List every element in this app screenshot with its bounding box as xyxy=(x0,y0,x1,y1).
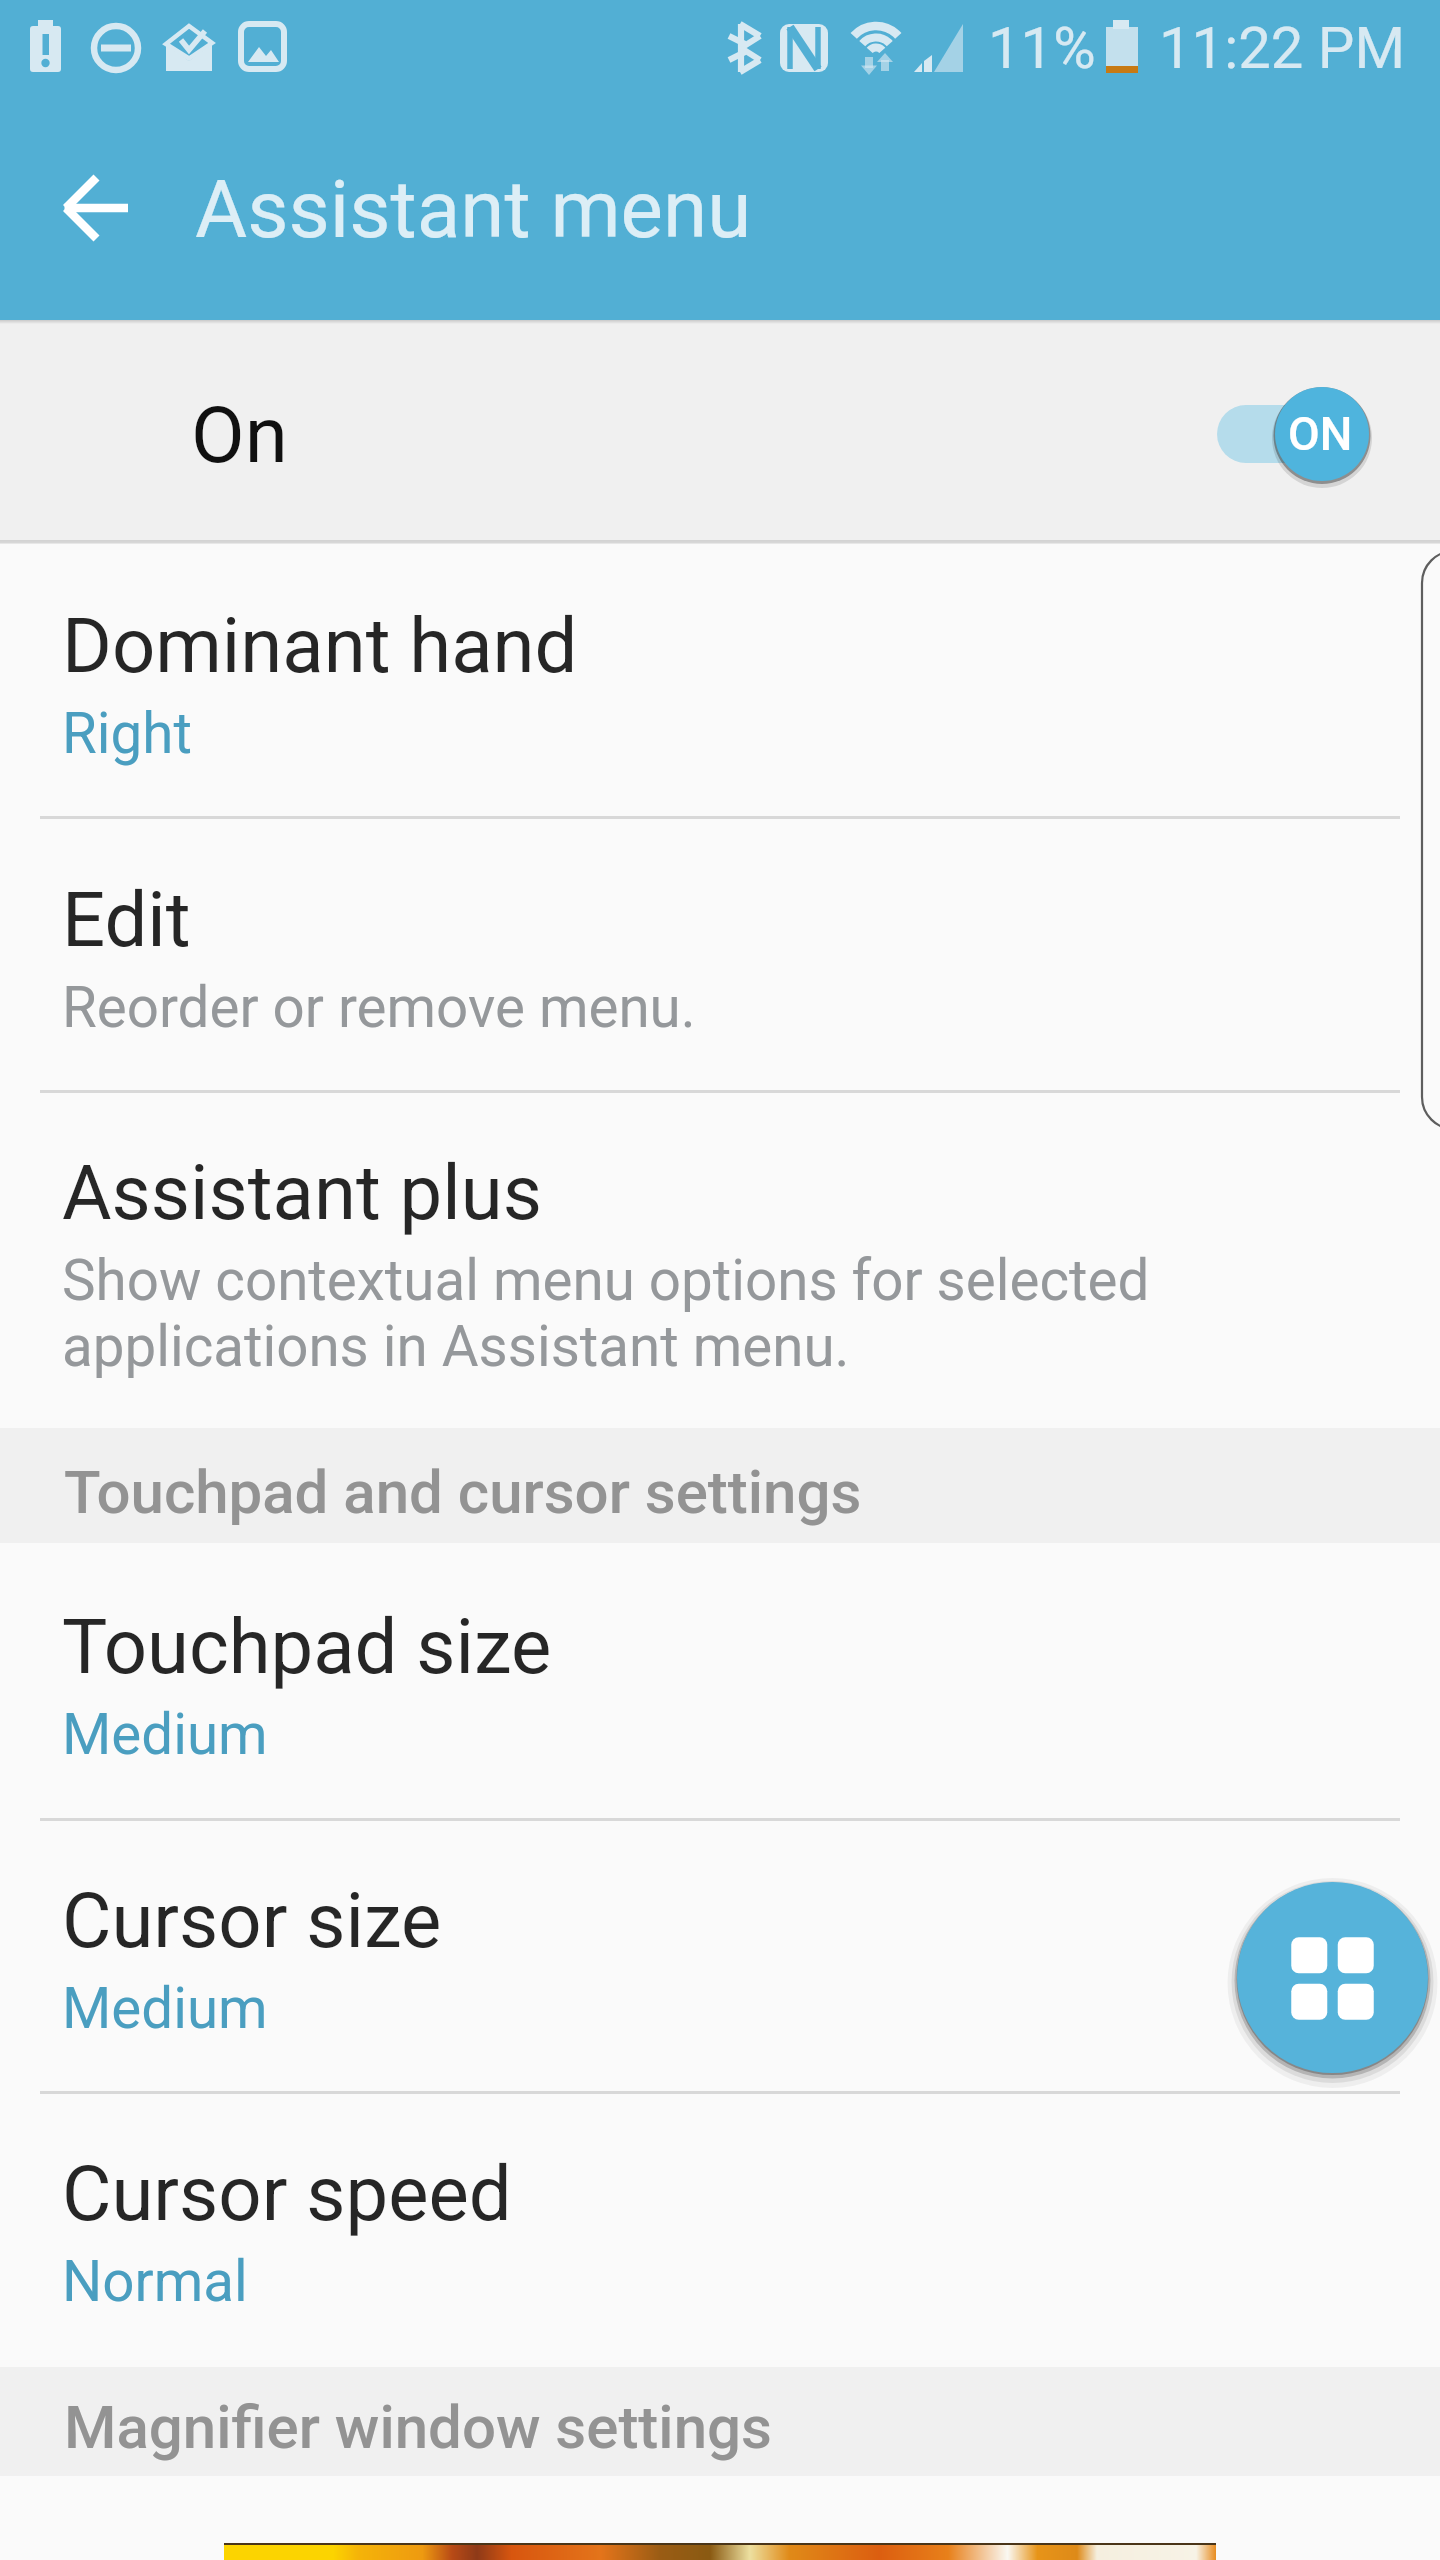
staticText: Touchpad and cursor settings xyxy=(64,1457,862,1527)
staticText: Assistant plus xyxy=(62,1148,542,1237)
staticText: Reorder or remove menu. xyxy=(62,975,696,1041)
staticText: Show contextual menu options for selecte… xyxy=(62,1248,1150,1380)
staticText: Cursor speed xyxy=(62,2149,512,2238)
staticText: On xyxy=(191,390,288,481)
staticText: 11:22 PM xyxy=(1159,14,1406,82)
button[interactable]: Edit xyxy=(0,819,1440,1090)
button[interactable]: Cursor speed xyxy=(0,2094,1440,2367)
staticText: Magnifier window settings xyxy=(64,2392,772,2462)
button[interactable]: Dominant hand xyxy=(0,544,1440,816)
button[interactable]: Back xyxy=(16,158,129,271)
button[interactable]: On xyxy=(0,320,1440,540)
staticText: Medium xyxy=(62,1976,268,2042)
button[interactable]: Cursor size xyxy=(0,1821,1440,2091)
button[interactable]: Open Assistant menu xyxy=(1237,1882,1428,2073)
staticText: Touchpad size xyxy=(62,1602,552,1691)
staticText: Cursor size xyxy=(62,1876,442,1965)
staticText: Edit xyxy=(62,875,191,964)
staticText: Normal xyxy=(62,2249,248,2315)
button[interactable]: Assistant plus xyxy=(0,1093,1440,1428)
button[interactable]: Touchpad size xyxy=(0,1543,1440,1818)
staticText: Dominant hand xyxy=(62,601,578,690)
staticText: Medium xyxy=(62,1702,268,1768)
staticText: 11% xyxy=(988,14,1096,82)
staticText: ON xyxy=(1288,407,1353,461)
staticText: Right xyxy=(62,701,192,767)
staticText: Assistant menu xyxy=(195,163,752,257)
